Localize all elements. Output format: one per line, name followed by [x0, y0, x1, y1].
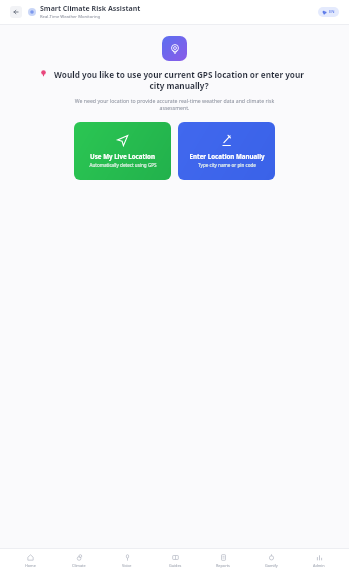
staticText: Real-Time Weather Monitoring — [40, 14, 101, 20]
button[interactable]: Admin — [295, 549, 343, 573]
staticText: Voice — [122, 563, 132, 568]
button[interactable]: Home — [6, 549, 55, 573]
button[interactable]: Guides — [151, 549, 199, 573]
staticText: Home — [25, 563, 36, 568]
staticText: Enter Location Manually — [189, 152, 265, 160]
button[interactable]: EN — [318, 7, 339, 17]
staticText: We need your location to provide accurat… — [62, 97, 287, 112]
button[interactable]: Voice — [103, 549, 151, 573]
staticText: Smart Climate Risk Assistant — [40, 4, 141, 14]
staticText: Guides — [169, 563, 182, 568]
staticText: Would you like to use your current GPS l… — [49, 69, 309, 91]
staticText: Admin — [313, 563, 325, 568]
staticText: Automatically detect using GPS — [89, 162, 157, 168]
staticText: Gamify — [265, 563, 278, 568]
staticText: Climate — [72, 563, 86, 568]
staticText: Reports — [216, 563, 230, 568]
button[interactable]: Use My Live Location — [74, 122, 171, 180]
button[interactable]: Climate — [55, 549, 103, 573]
staticText: Type city name or pin code — [198, 162, 256, 168]
staticText: Use My Live Location — [90, 152, 155, 160]
button[interactable]: Reports — [199, 549, 247, 573]
staticText: EN — [329, 9, 335, 15]
button[interactable]: Back — [10, 6, 22, 18]
button[interactable]: Gamify — [247, 549, 295, 573]
button[interactable]: Enter Location Manually — [178, 122, 275, 180]
